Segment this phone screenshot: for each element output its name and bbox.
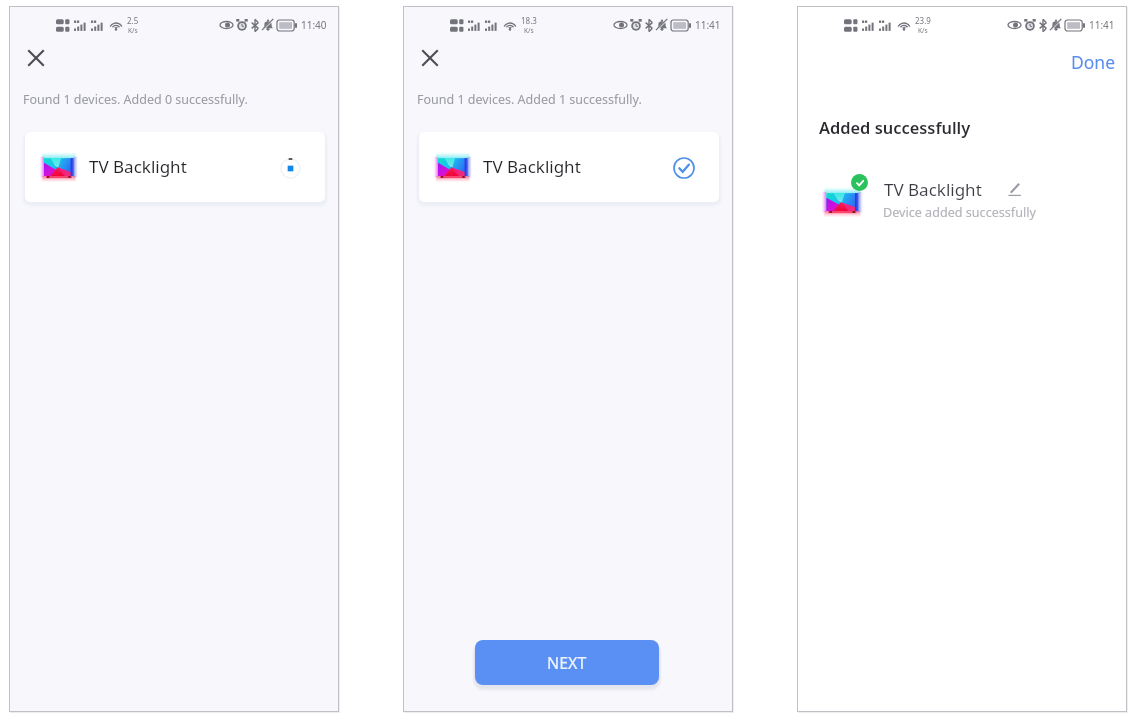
staticText: 11:40 [301,18,327,32]
button[interactable]: TV Backlight [25,132,325,202]
button[interactable]: Rename [1004,178,1024,198]
staticText: 23.9 [915,15,931,26]
staticText: TV Backlight [483,155,581,178]
staticText: K/s [524,26,534,35]
staticText: Added successfully [819,116,971,138]
staticText: K/s [128,26,138,35]
staticText: 18.3 [521,15,537,26]
button[interactable]: Done [1061,44,1126,80]
staticText: NEXT [547,652,587,674]
staticText: Found 1 devices. Added 0 successfully. [23,91,248,108]
staticText: 2.5 [127,15,139,26]
button[interactable] [806,171,1118,231]
staticText: 11:41 [1089,18,1115,32]
button[interactable]: Close [414,42,446,74]
staticText: TV Backlight [884,178,982,201]
button[interactable]: TV Backlight [419,132,719,202]
staticText: Done [1071,50,1116,74]
staticText: Device added successfully [883,204,1036,221]
button[interactable]: Close [20,42,52,74]
staticText: 11:41 [695,18,721,32]
staticText: Found 1 devices. Added 1 successfully. [417,91,642,108]
button[interactable]: NEXT [475,640,659,685]
staticText: TV Backlight [89,155,187,178]
staticText: K/s [918,26,928,35]
